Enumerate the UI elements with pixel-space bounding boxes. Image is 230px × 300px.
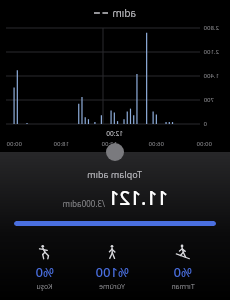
staticText: 18:00 [53,140,69,148]
staticText: 06:00 [148,140,164,148]
staticText: Yürüme [99,282,125,292]
staticText: 0 [203,120,207,128]
staticText: 12:00 [106,129,123,138]
button[interactable] [14,221,216,226]
button[interactable]: Tırman [165,242,201,294]
other: Tırman [175,244,191,260]
staticText: adım [112,6,136,20]
staticText: 1.400 [203,72,219,80]
other: Yürüme [104,244,120,260]
staticText: %0 [35,263,54,281]
staticText: 2.800 [203,24,219,32]
staticText: Toplam adım [87,168,142,180]
staticText: 2.100 [203,48,219,56]
other: Koşu [36,244,52,260]
staticText: 00:00 [6,140,22,148]
button[interactable]: Koşu [29,242,60,294]
staticText: Tırman [171,282,195,292]
staticText: 00:00 [196,140,212,148]
staticText: 700 [203,96,214,104]
staticText: %100 [95,263,129,281]
staticText: 11.121 [108,185,168,211]
staticText: /3.000adım [62,198,105,209]
button[interactable]: Profile [106,143,124,161]
staticText: Koşu [36,282,53,292]
button[interactable]: Yürüme [89,242,135,294]
staticText: 12:00 [101,140,117,148]
staticText: %0 [173,263,192,281]
